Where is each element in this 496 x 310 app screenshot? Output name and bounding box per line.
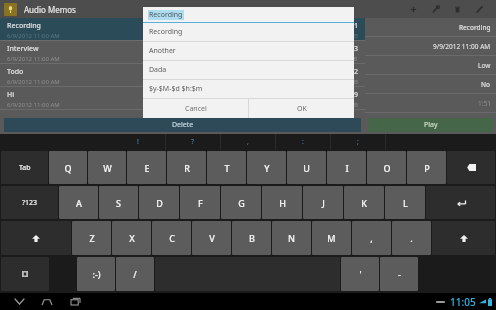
staticText: 0:09: [344, 90, 358, 100]
button[interactable]: V: [192, 221, 231, 255]
button[interactable]: Delete: [446, 0, 468, 18]
staticText: Another: [149, 46, 176, 56]
button[interactable]: Add: [402, 0, 424, 18]
button[interactable]: J: [303, 186, 343, 219]
button[interactable]: Low: [365, 56, 496, 75]
button[interactable]: C: [152, 221, 191, 255]
button[interactable]: K: [344, 186, 384, 219]
button[interactable]: Recording: [365, 18, 496, 37]
staticText: A: [76, 197, 82, 209]
button[interactable]: Edit: [468, 0, 490, 18]
button[interactable]: G: [221, 186, 261, 219]
button[interactable]: H: [262, 186, 302, 219]
staticText: I: [345, 162, 349, 174]
staticText: /: [133, 268, 137, 280]
button[interactable]: Symbols: [1, 186, 58, 219]
button[interactable]: Recording: [143, 23, 354, 42]
button[interactable]: S: [99, 186, 138, 219]
button[interactable]: Home: [36, 293, 58, 310]
button[interactable]: Play: [368, 118, 493, 132]
button[interactable]: Backspace: [447, 151, 495, 184]
button[interactable]: !: [110, 134, 165, 150]
button[interactable]: 1:51: [365, 94, 496, 113]
staticText: Tab: [19, 163, 31, 173]
staticText: Recording: [149, 10, 183, 20]
button[interactable]: :: [276, 134, 330, 150]
button[interactable]: App icon: [4, 3, 17, 16]
staticText: OK: [297, 104, 307, 114]
button[interactable]: ,: [352, 221, 391, 255]
staticText: Recording: [7, 21, 41, 31]
button[interactable]: N: [272, 221, 311, 255]
button[interactable]: O: [367, 151, 406, 184]
staticText: !: [137, 137, 139, 147]
button[interactable]: E: [127, 151, 166, 184]
button[interactable]: A: [59, 186, 98, 219]
button[interactable]: 9/9/2012 11:00 AM: [365, 37, 496, 56]
button[interactable]: U: [287, 151, 326, 184]
button[interactable]: -: [380, 257, 418, 291]
staticText: 6/9/2012 11:00 AM: [7, 78, 60, 86]
staticText: Todo: [7, 67, 24, 77]
button[interactable]: .: [392, 221, 431, 255]
button[interactable]: Z: [72, 221, 111, 255]
button[interactable]: M: [312, 221, 351, 255]
button[interactable]: /: [116, 257, 154, 291]
button[interactable]: W: [88, 151, 126, 184]
button[interactable]: I: [327, 151, 366, 184]
button[interactable]: Keyboard settings: [1, 257, 49, 291]
button[interactable]: Interview: [0, 41, 365, 64]
button[interactable]: Another: [143, 42, 354, 61]
staticText: ,: [247, 137, 249, 147]
staticText: Z: [89, 232, 95, 244]
staticText: Interview: [7, 44, 39, 54]
button[interactable]: Q: [49, 151, 87, 184]
button[interactable]: X: [112, 221, 151, 255]
button[interactable]: OK: [249, 99, 354, 118]
staticText: F: [198, 197, 203, 209]
staticText: G: [238, 197, 245, 209]
staticText: Low: [478, 61, 491, 70]
staticText: K: [361, 197, 367, 209]
staticText: 46MB: [341, 55, 358, 63]
button[interactable]: Todo: [0, 64, 365, 87]
button[interactable]: Cancel: [143, 99, 248, 118]
button[interactable]: ': [341, 257, 379, 291]
button[interactable]: :-): [77, 257, 115, 291]
button[interactable]: ;: [331, 134, 385, 150]
button[interactable]: Shift: [1, 221, 71, 255]
button[interactable]: F: [180, 186, 220, 219]
button[interactable]: Recent apps: [64, 293, 86, 310]
button[interactable]: Dada: [143, 61, 354, 80]
button[interactable]: Settings: [424, 0, 446, 18]
staticText: Cancel: [185, 104, 207, 114]
button[interactable]: $y-$M-$d $h:$m: [143, 80, 354, 99]
button[interactable]: P: [407, 151, 446, 184]
button[interactable]: Hi: [0, 87, 365, 110]
button[interactable]: Recording: [0, 18, 365, 41]
button[interactable]: No: [365, 75, 496, 94]
button[interactable]: Y: [247, 151, 286, 184]
button[interactable]: T: [207, 151, 246, 184]
staticText: No: [481, 80, 491, 89]
staticText: N: [288, 232, 295, 244]
button[interactable]: Back: [8, 293, 30, 310]
staticText: -: [398, 268, 401, 280]
button[interactable]: ?: [166, 134, 220, 150]
button[interactable]: B: [232, 221, 271, 255]
button[interactable]: Shift: [432, 221, 495, 255]
staticText: Delete: [172, 120, 194, 130]
button[interactable]: Delete: [4, 118, 361, 132]
staticText: ,: [370, 232, 373, 244]
staticText: R: [184, 162, 190, 174]
staticText: Audio Memos: [24, 4, 76, 15]
staticText: ': [359, 268, 362, 280]
button[interactable]: R: [167, 151, 206, 184]
staticText: 36:23: [340, 44, 358, 54]
button[interactable]: Enter: [426, 186, 495, 219]
button[interactable]: ,: [221, 134, 275, 150]
button[interactable]: L: [385, 186, 425, 219]
button[interactable]: Tab: [1, 151, 48, 184]
button[interactable]: D: [139, 186, 179, 219]
